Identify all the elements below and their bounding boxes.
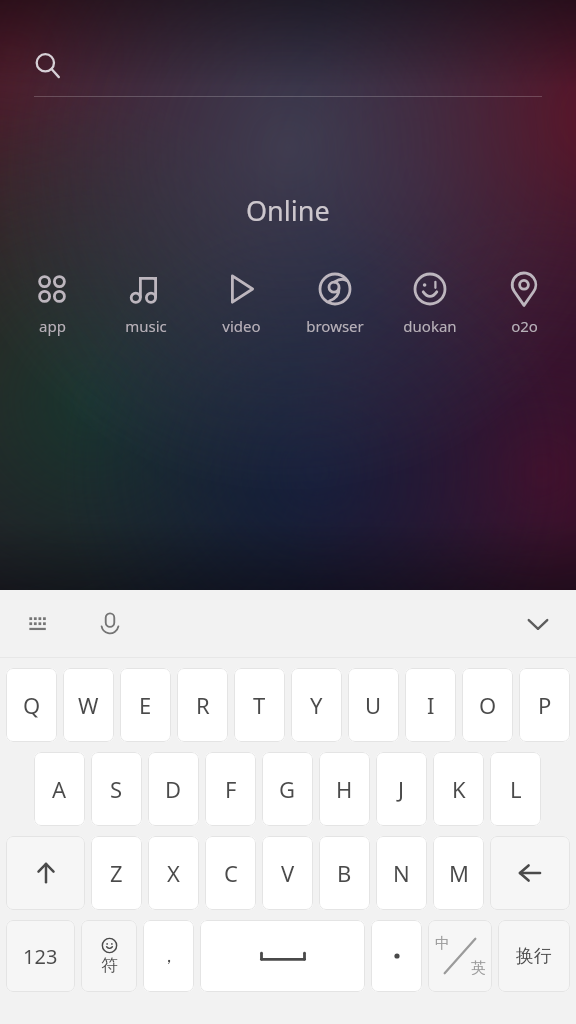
button[interactable]: Keyboard layout xyxy=(14,600,62,648)
button[interactable]: Search xyxy=(20,38,74,92)
button[interactable]: 123 xyxy=(6,920,75,992)
button[interactable]: C xyxy=(205,836,256,910)
staticText: 符 xyxy=(101,955,118,976)
staticText: W xyxy=(78,690,99,720)
staticText: browser xyxy=(306,316,364,336)
staticText: T xyxy=(253,690,266,720)
button[interactable]: T xyxy=(234,668,285,742)
staticText: K xyxy=(452,774,466,804)
button[interactable]: P xyxy=(519,668,570,742)
staticText: B xyxy=(337,858,352,888)
button[interactable]: I xyxy=(405,668,456,742)
staticText: 换行 xyxy=(516,945,552,968)
staticText: 英 xyxy=(471,959,486,978)
staticText: R xyxy=(196,690,210,720)
button[interactable]: F xyxy=(205,752,256,826)
staticText: P xyxy=(538,690,552,720)
button[interactable]: E xyxy=(120,668,171,742)
staticText: N xyxy=(393,858,410,888)
staticText: Z xyxy=(110,858,123,888)
button[interactable]: V xyxy=(262,836,313,910)
staticText: O xyxy=(479,690,497,720)
staticText: app xyxy=(39,316,66,336)
button[interactable]: N xyxy=(376,836,427,910)
staticText: U xyxy=(365,690,382,720)
button[interactable]: Y xyxy=(291,668,342,742)
button[interactable]: M xyxy=(433,836,484,910)
button[interactable]: Backspace xyxy=(490,836,570,910)
button[interactable]: W xyxy=(63,668,114,742)
button[interactable]: app xyxy=(8,267,96,338)
button[interactable]: 符 xyxy=(81,920,137,992)
button[interactable]: browser xyxy=(291,267,379,338)
staticText: G xyxy=(279,774,296,804)
staticText: S xyxy=(110,774,123,804)
button[interactable]: video xyxy=(197,267,285,338)
button[interactable]: H xyxy=(319,752,370,826)
staticText: V xyxy=(281,858,295,888)
button[interactable]: D xyxy=(148,752,199,826)
button[interactable]: Z xyxy=(91,836,142,910)
staticText: M xyxy=(449,858,469,888)
staticText: I xyxy=(427,690,435,720)
button[interactable]: 换行 xyxy=(498,920,570,992)
button[interactable]: o2o xyxy=(480,267,568,338)
button[interactable]: X xyxy=(148,836,199,910)
button[interactable]: K xyxy=(433,752,484,826)
staticText: Y xyxy=(310,690,323,720)
button[interactable]: music xyxy=(102,267,190,338)
button[interactable]: Voice input xyxy=(86,600,134,648)
button[interactable]: Switch Chinese English xyxy=(428,920,492,992)
button[interactable]: J xyxy=(376,752,427,826)
staticText: o2o xyxy=(511,316,538,336)
button[interactable]: G xyxy=(262,752,313,826)
button[interactable]: R xyxy=(177,668,228,742)
button[interactable]: Space xyxy=(200,920,365,992)
staticText: video xyxy=(222,316,261,336)
staticText: C xyxy=(224,858,238,888)
staticText: Online xyxy=(246,192,330,229)
staticText: L xyxy=(510,774,522,804)
button[interactable]: L xyxy=(490,752,541,826)
button[interactable]: duokan xyxy=(386,267,474,338)
staticText: music xyxy=(125,316,167,336)
staticText: J xyxy=(398,774,405,804)
button[interactable]: Q xyxy=(6,668,57,742)
button[interactable]: O xyxy=(462,668,513,742)
button[interactable]: A xyxy=(34,752,85,826)
staticText: duokan xyxy=(403,316,457,336)
button[interactable]: U xyxy=(348,668,399,742)
staticText: H xyxy=(336,774,353,804)
button[interactable]: Hide keyboard xyxy=(514,600,562,648)
button[interactable]: B xyxy=(319,836,370,910)
button[interactable]: S xyxy=(91,752,142,826)
staticText: ， xyxy=(160,945,178,968)
staticText: E xyxy=(139,690,152,720)
button[interactable]: Shift xyxy=(6,836,85,910)
staticText: D xyxy=(165,774,182,804)
staticText: 123 xyxy=(23,943,58,970)
staticText: F xyxy=(225,774,237,804)
button[interactable]: Period xyxy=(371,920,422,992)
staticText: 中 xyxy=(435,934,450,953)
button[interactable]: ， xyxy=(143,920,194,992)
staticText: X xyxy=(167,858,180,888)
staticText: A xyxy=(52,774,67,804)
staticText: Q xyxy=(23,690,41,720)
